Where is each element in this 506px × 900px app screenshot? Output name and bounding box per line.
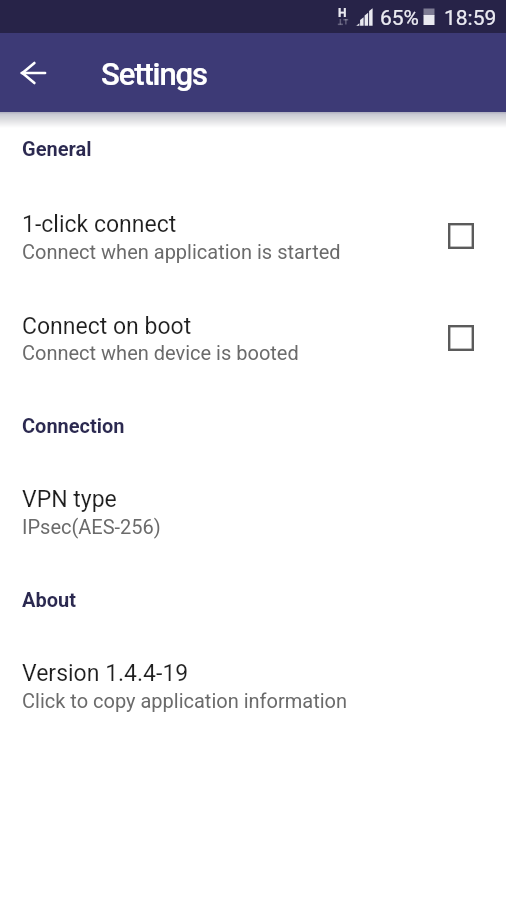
staticText: Connect when application is started (22, 240, 341, 263)
staticText: H (338, 6, 347, 20)
button[interactable]: 1-click connect (439, 214, 483, 258)
staticText: Connection (22, 414, 125, 437)
staticText: 18:59 (444, 6, 497, 31)
staticText: Version 1.4.4-19 (22, 660, 189, 687)
staticText: 65% (380, 6, 419, 31)
staticText: VPN type (22, 486, 117, 513)
staticText: About (22, 588, 76, 611)
staticText: Connect on boot (22, 313, 192, 340)
staticText: General (22, 137, 92, 160)
button[interactable]: Back (10, 49, 58, 97)
staticText: 1-click connect (22, 211, 177, 238)
button[interactable]: Connect on boot (439, 316, 483, 360)
button[interactable]: 1-click connect (0, 197, 506, 270)
staticText: Connect when device is booted (22, 341, 299, 364)
button[interactable]: Version 1.4.4-19 (0, 646, 506, 719)
staticText: Settings (101, 56, 207, 92)
button[interactable]: VPN type (0, 472, 506, 545)
staticText: Click to copy application information (22, 689, 347, 712)
button[interactable]: Connect on boot (0, 299, 506, 371)
staticText: IPsec(AES-256) (22, 515, 161, 538)
